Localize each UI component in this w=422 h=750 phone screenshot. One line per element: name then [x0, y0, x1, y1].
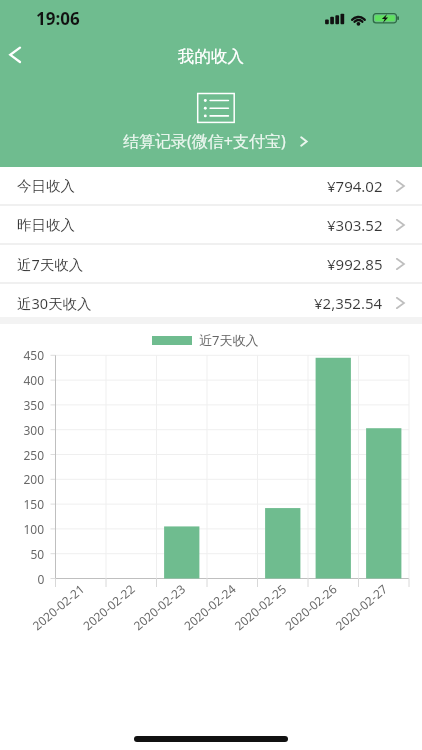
- staticText: 近7天收入: [17, 254, 84, 274]
- button[interactable]: 近7天收入: [0, 331, 416, 349]
- staticText: ¥794.02: [327, 176, 383, 196]
- button[interactable]: 近7天收入: [0, 245, 422, 282]
- staticText: ¥992.85: [327, 254, 383, 274]
- button[interactable]: 昨日收入: [0, 206, 422, 243]
- staticText: 我的收入: [178, 46, 244, 67]
- button[interactable]: 近30天收入: [0, 284, 422, 321]
- button[interactable]: Back: [0, 39, 32, 71]
- staticText: ¥2,352.54: [314, 293, 383, 313]
- staticText: 昨日收入: [17, 216, 75, 234]
- staticText: 近7天收入: [199, 331, 259, 349]
- staticText: ¥303.52: [327, 215, 383, 235]
- staticText: 19:06: [36, 7, 80, 30]
- button[interactable]: 今日收入: [0, 167, 422, 204]
- staticText: 近30天收入: [17, 293, 92, 313]
- button[interactable]: 结算记录(微信+支付宝): [123, 88, 308, 152]
- staticText: 结算记录(微信+支付宝): [123, 130, 286, 152]
- staticText: 今日收入: [17, 177, 75, 195]
